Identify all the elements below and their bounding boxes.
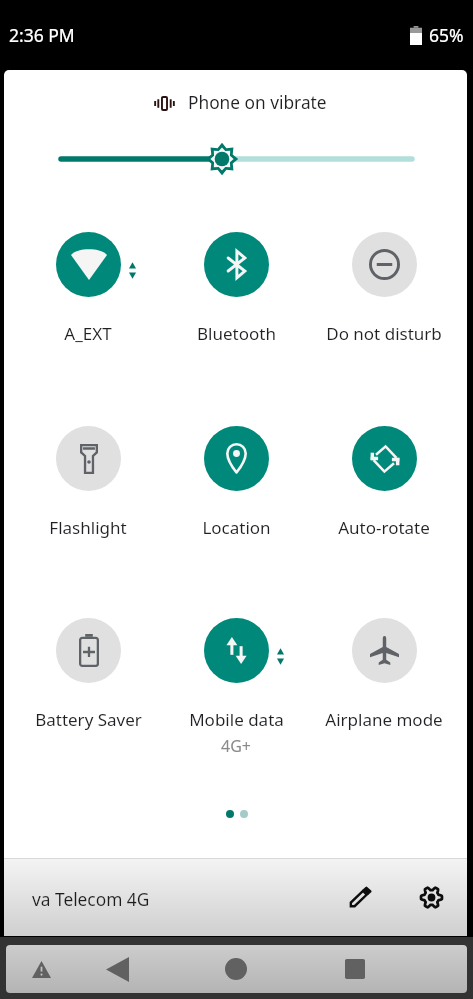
staticText: Phone on vibrate: [188, 91, 327, 115]
staticText: Airplane mode: [325, 708, 443, 731]
button[interactable]: Back: [77, 945, 157, 993]
button[interactable]: Recents: [315, 945, 395, 993]
staticText: Flashlight: [49, 516, 127, 539]
button[interactable]: Airplane mode: [310, 618, 458, 731]
staticText: Location: [202, 516, 271, 539]
staticText: Mobile data: [189, 708, 284, 731]
staticText: 4G+: [221, 735, 251, 757]
button[interactable]: Warning: [6, 945, 81, 993]
button[interactable]: Settings: [407, 873, 455, 921]
staticText: Bluetooth: [197, 322, 276, 345]
staticText: Do not disturb: [326, 322, 442, 345]
button[interactable]: Brightness: [4, 139, 467, 179]
button[interactable]: Do not disturb: [310, 232, 458, 345]
button[interactable]: A_EXT: [14, 232, 162, 345]
staticText: A_EXT: [64, 322, 112, 345]
button[interactable]: Edit tiles: [336, 873, 384, 921]
button[interactable]: Battery Saver: [14, 618, 162, 731]
staticText: 2:36 PM: [9, 23, 75, 47]
button[interactable]: Bluetooth: [162, 232, 310, 345]
button[interactable]: Home: [196, 945, 276, 993]
button[interactable]: Mobile data: [162, 618, 310, 757]
staticText: 65%: [429, 23, 464, 47]
staticText: Auto-rotate: [338, 516, 430, 539]
button[interactable]: Location: [162, 426, 310, 539]
staticText: va Telecom 4G: [32, 888, 150, 912]
button[interactable]: Auto-rotate: [310, 426, 458, 539]
staticText: Battery Saver: [35, 708, 142, 731]
button[interactable]: va Telecom 4G: [32, 888, 150, 912]
button[interactable]: Flashlight: [14, 426, 162, 539]
